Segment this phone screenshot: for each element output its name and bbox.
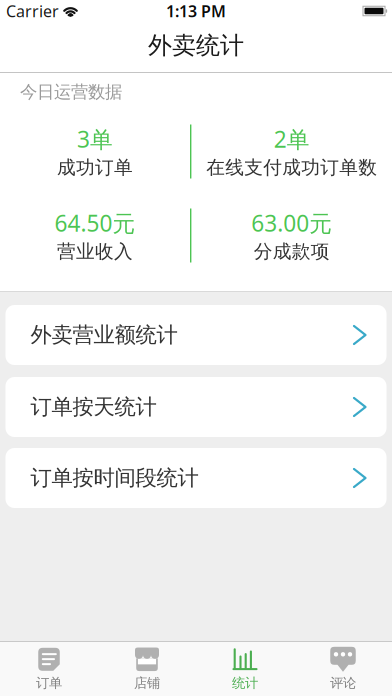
staticText: 2单 [274,124,310,154]
staticText: 成功订单 [57,156,133,179]
staticText: 统计 [232,675,258,691]
staticText: 外卖营业额统计 [30,322,177,348]
staticText: 3单 [77,124,113,154]
button[interactable]: 评论 [294,642,392,696]
button[interactable]: 店铺 [98,642,196,696]
staticText: 在线支付成功订单数 [206,156,377,179]
button[interactable]: 订单 [0,642,98,696]
staticText: 63.00元 [251,208,332,238]
staticText: 订单 [36,675,62,691]
staticText: 1:13 PM [166,0,226,22]
button[interactable]: 统计 [196,642,294,696]
button[interactable]: 订单按时间段统计 [0,448,392,508]
staticText: 评论 [330,675,356,691]
staticText: 营业收入 [57,240,133,263]
staticText: 店铺 [134,675,160,691]
staticText: 今日运营数据 [20,81,122,103]
staticText: 分成款项 [254,240,330,263]
button[interactable]: 外卖营业额统计 [0,305,392,365]
staticText: Carrier [6,0,59,22]
staticText: 64.50元 [54,208,135,238]
staticText: 订单按天统计 [30,394,156,420]
staticText: 外卖统计 [148,31,244,60]
staticText: 订单按时间段统计 [30,465,198,491]
button[interactable]: 订单按天统计 [0,377,392,437]
